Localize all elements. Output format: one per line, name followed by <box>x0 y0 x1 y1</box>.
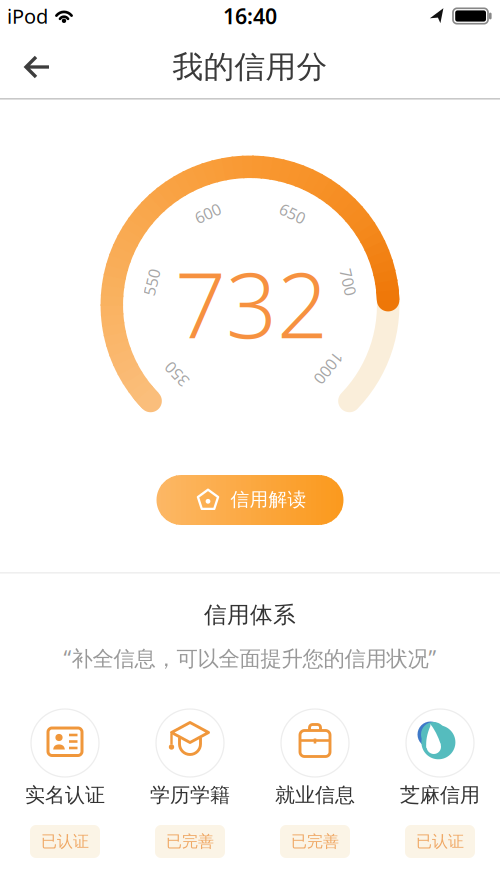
staticText: 16:40 <box>223 2 277 30</box>
staticText: 已完善 <box>166 832 214 851</box>
staticText: 实名认证 <box>25 783 105 807</box>
staticText: 信用解读 <box>230 488 306 511</box>
button[interactable]: 实名认证 <box>3 700 127 877</box>
staticText: 已认证 <box>41 832 89 851</box>
staticText: 芝麻信用 <box>400 783 480 807</box>
staticText: iPod <box>7 3 48 29</box>
staticText: 550 <box>138 272 165 293</box>
button[interactable]: 学历学籍 <box>128 700 252 877</box>
staticText: 600 <box>194 203 221 224</box>
staticText: 350 <box>163 364 190 385</box>
staticText: 已认证 <box>416 832 464 851</box>
staticText: 732 <box>175 244 328 363</box>
staticText: 700 <box>335 271 362 293</box>
button[interactable]: Back <box>17 47 57 87</box>
staticText: “补全信息，可以全面提升您的信用状况” <box>63 644 436 672</box>
staticText: 就业信息 <box>275 783 355 807</box>
staticText: 已完善 <box>291 832 339 851</box>
staticText: 学历学籍 <box>150 783 230 807</box>
button[interactable]: 就业信息 <box>253 700 377 877</box>
staticText: 信用体系 <box>204 601 296 629</box>
button[interactable]: 芝麻信用 <box>378 700 500 877</box>
staticText: 我的信用分 <box>172 48 327 86</box>
button[interactable]: 信用解读 <box>156 475 343 525</box>
staticText: 650 <box>279 203 306 224</box>
staticText: 1000 <box>311 357 347 379</box>
